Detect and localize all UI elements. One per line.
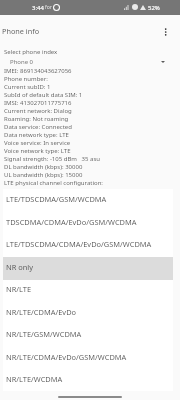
staticText: NR only [6,262,34,272]
staticText: Signal strength: -105 dBm 35 asu [4,155,100,163]
staticText: Data service: Connected [4,123,72,131]
button[interactable]: NR/LTE/WCDMA [3,369,173,392]
button[interactable]: More options [156,22,175,41]
staticText: 3:44 [32,4,44,12]
button[interactable]: NR only [3,257,173,280]
staticText: IMEI: 869134043627056 [4,67,72,75]
staticText: Phone number: [4,75,48,83]
button[interactable]: NR/LTE/CDMA/EvDo/GSM/WCDMA [3,347,173,370]
staticText: UL bandwidth (kbps): 15000 [4,171,83,179]
staticText: Voice network type: LTE [4,147,71,155]
staticText: DL bandwidth (kbps): 30000 [4,163,83,171]
staticText: Data network type: LTE [4,131,69,139]
button[interactable]: Select phone index [0,45,180,67]
staticText: Phone 0 [10,58,34,66]
staticText: Current subID: 1 [4,83,51,91]
staticText: NR/LTE/CDMA/EvDo [6,307,77,317]
staticText: IMSI: 413027011775716 [4,99,72,107]
staticText: Current network: Dialog [4,107,72,115]
staticText: Phone info [2,26,40,36]
staticText: Voice service: In service [4,139,71,147]
staticText: Roaming: Not roaming [4,115,69,123]
staticText: NR/LTE/CDMA/EvDo/GSM/WCDMA [6,352,127,362]
button[interactable]: NR/LTE/CDMA/EvDo [3,302,173,325]
staticText: NR/LTE [6,284,32,294]
staticText: 52% [148,4,160,12]
button[interactable]: LTE/TDSCDMA/CDMA/EvDo/GSM/WCDMA [3,234,173,257]
staticText: SubId of default data SIM: 1 [4,91,83,99]
staticText: NR/LTE/WCDMA [6,374,63,384]
button[interactable]: LTE/TDSCDMA/GSM/WCDMA [3,189,173,212]
staticText: for [45,4,52,11]
staticText: TDSCDMA/CDMA/EvDo/GSM/WCDMA [6,217,137,227]
staticText: LTE/TDSCDMA/CDMA/EvDo/GSM/WCDMA [6,239,152,249]
staticText: NR/LTE/GSM/WCDMA [6,329,82,339]
button[interactable]: NR/LTE [3,279,173,302]
staticText: LTE/TDSCDMA/GSM/WCDMA [6,194,107,204]
button[interactable]: NR/LTE/GSM/WCDMA [3,324,173,347]
staticText: LTE physical channel configuration: [4,179,103,187]
button[interactable]: TDSCDMA/CDMA/EvDo/GSM/WCDMA [3,212,173,235]
staticText: Select phone index [4,48,58,56]
